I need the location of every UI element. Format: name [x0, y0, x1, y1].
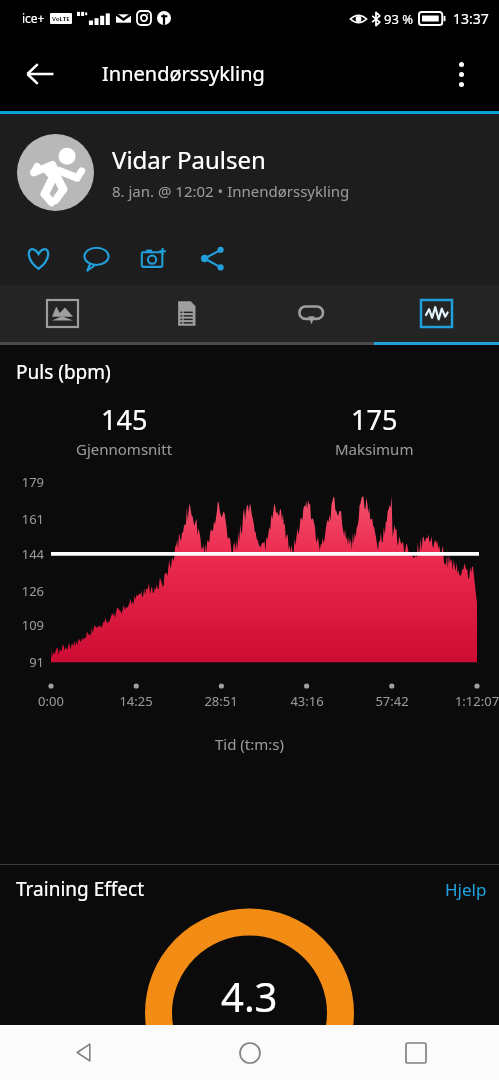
button[interactable]: Laps tab: [249, 285, 374, 342]
button[interactable]: Home: [167, 1025, 333, 1080]
button[interactable]: Share: [192, 238, 232, 278]
staticText: 145: [101, 401, 148, 438]
staticText: 43:16: [267, 692, 347, 710]
staticText: 1:12:07: [437, 692, 499, 710]
staticText: 144: [0, 545, 44, 563]
staticText: VoLTE: [52, 15, 70, 23]
staticText: Maksimum: [335, 439, 414, 459]
staticText: 179: [0, 473, 44, 491]
staticText: 13:37: [453, 9, 489, 28]
button[interactable]: Back: [0, 1025, 167, 1080]
staticText: 14:25: [96, 692, 176, 710]
staticText: Hjelp: [445, 878, 487, 901]
staticText: 0:00: [11, 692, 91, 710]
button[interactable]: Back: [12, 46, 68, 102]
staticText: Vidar Paulsen: [112, 143, 266, 176]
staticText: 91: [0, 653, 44, 671]
button[interactable]: Hjelp: [433, 872, 499, 907]
staticText: 109: [0, 616, 44, 634]
staticText: Tid (t:m:s): [0, 734, 499, 754]
staticText: 4.3: [221, 969, 278, 1023]
staticText: 175: [351, 401, 398, 438]
staticText: Innendørssykling: [102, 60, 265, 87]
button[interactable]: More options: [435, 48, 487, 100]
staticText: Training Effect: [16, 876, 144, 902]
staticText: 93 %: [384, 10, 414, 28]
staticText: 161: [0, 510, 44, 528]
staticText: 28:51: [181, 692, 261, 710]
staticText: 126: [0, 582, 44, 600]
button[interactable]: Like: [18, 238, 58, 278]
button[interactable]: Details tab: [124, 285, 249, 342]
button[interactable]: Map tab: [0, 285, 124, 342]
button[interactable]: Vidar Paulsen: [0, 114, 499, 230]
button[interactable]: Comment: [76, 238, 116, 278]
button[interactable]: Add photo: [134, 238, 174, 278]
staticText: ice+: [22, 10, 45, 26]
button[interactable]: Charts tab: [374, 285, 499, 342]
staticText: Gjennomsnitt: [76, 439, 173, 459]
staticText: 57:42: [352, 692, 432, 710]
staticText: Puls (bpm): [16, 359, 111, 385]
button[interactable]: Recent apps: [333, 1025, 499, 1080]
staticText: 8. jan. @ 12:02 • Innendørssykling: [112, 181, 350, 201]
